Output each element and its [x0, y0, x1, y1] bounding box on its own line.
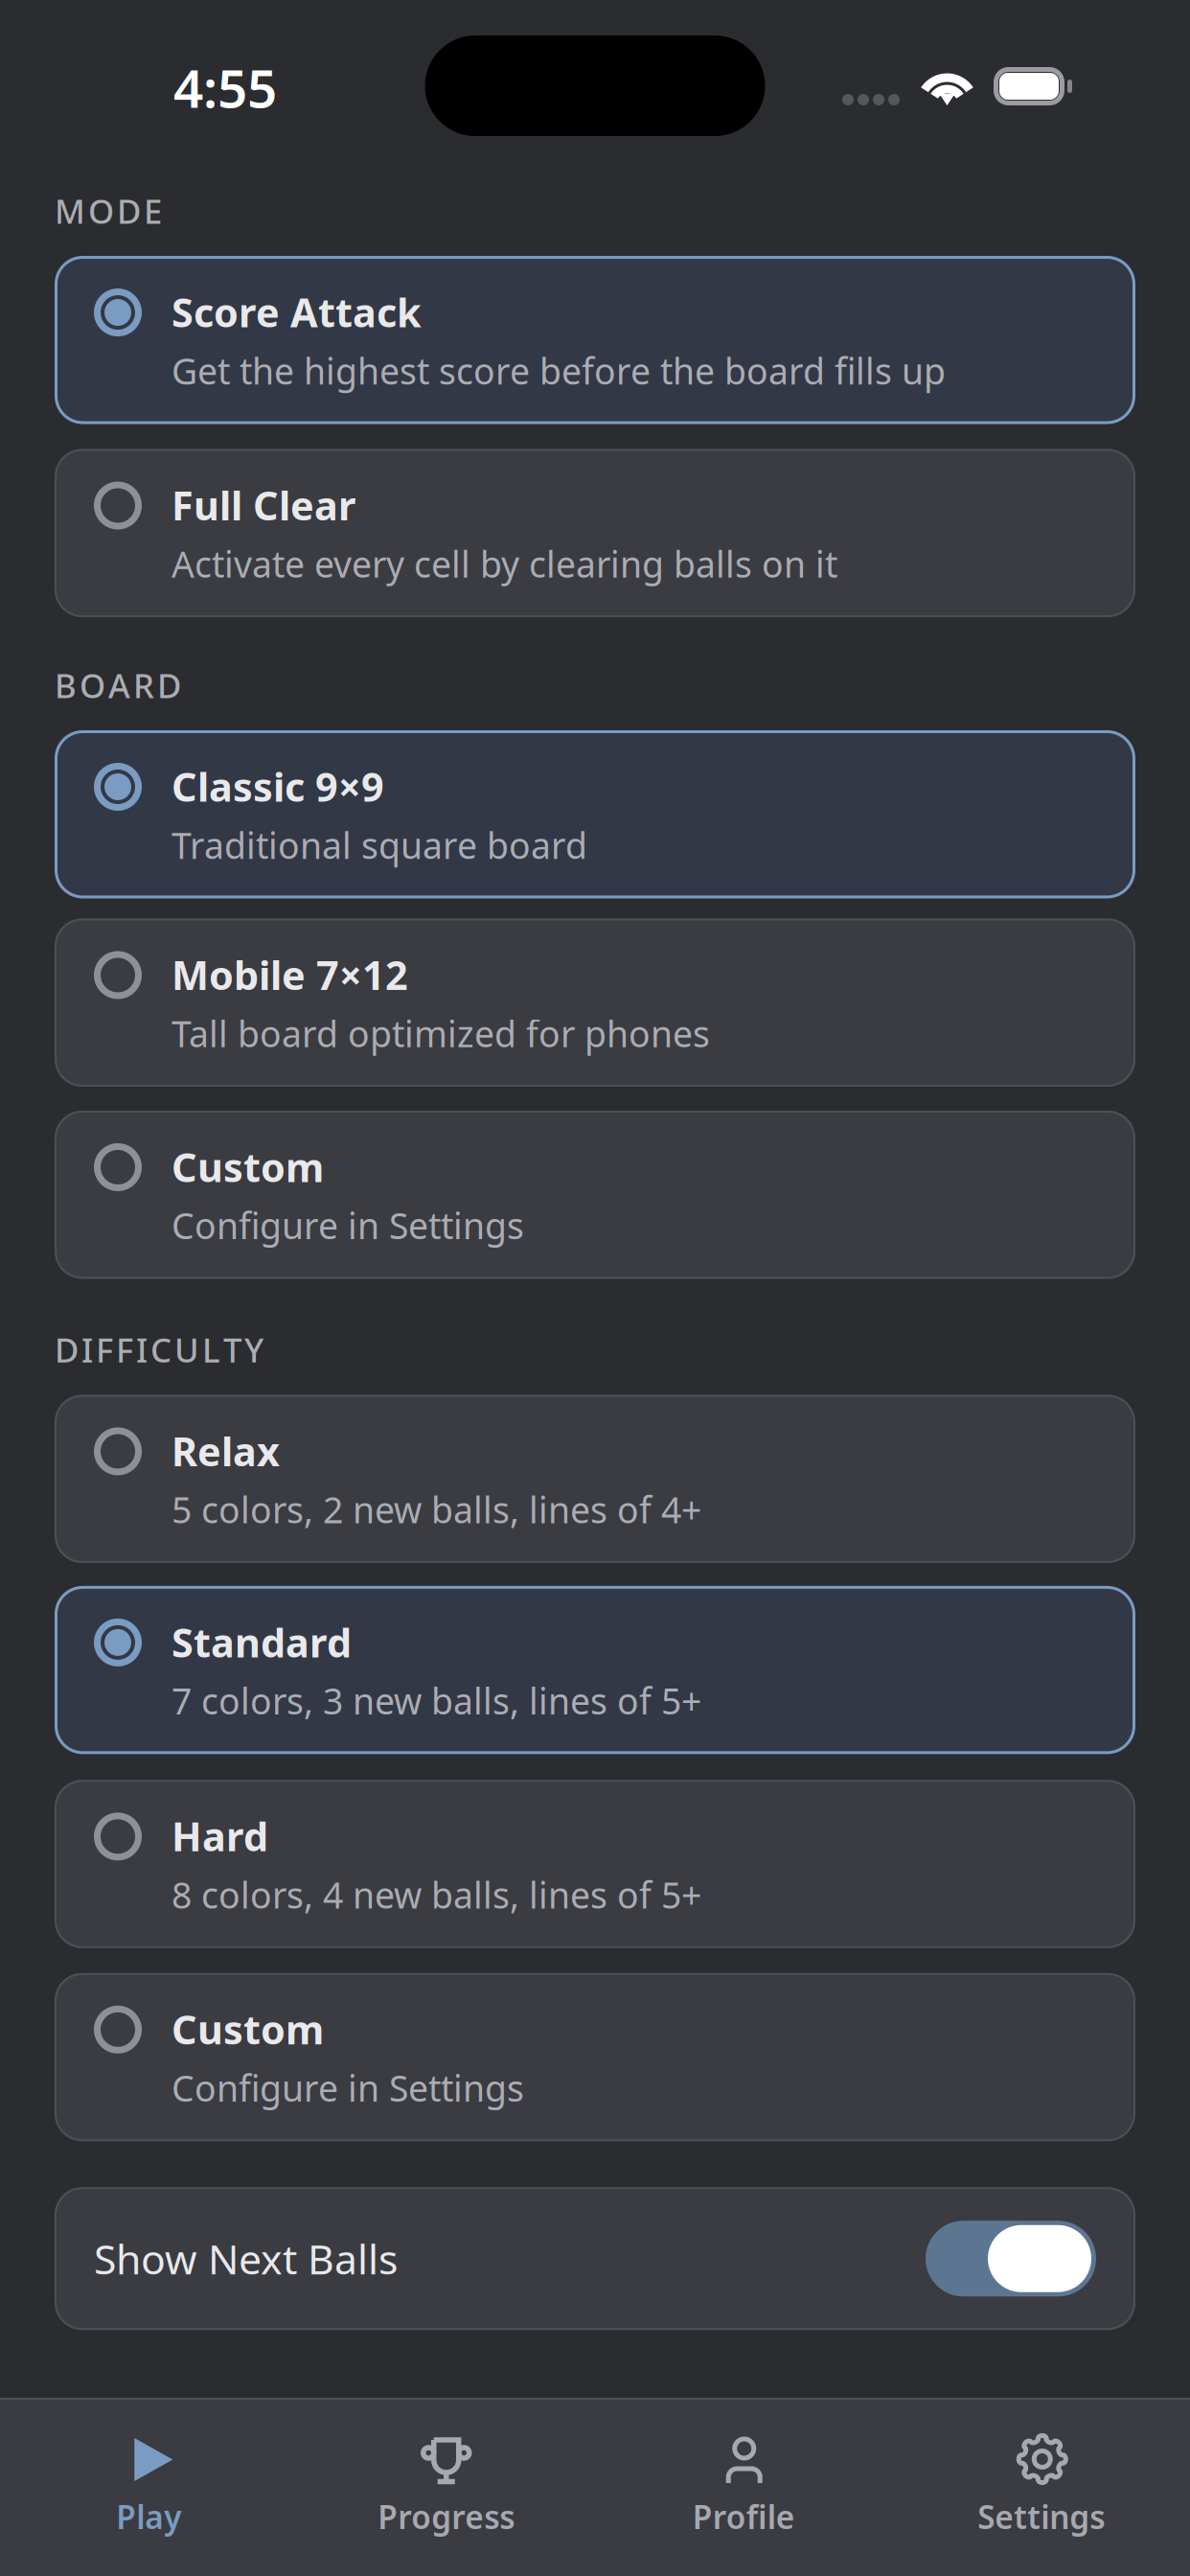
staticText: Activate every cell by clearing balls on… — [172, 540, 837, 587]
button[interactable]: Play — [0, 2409, 297, 2549]
staticText: D I F F I C U L T Y — [55, 1328, 263, 1372]
staticText: Score Attack — [172, 286, 422, 338]
staticText: 4:55 — [173, 53, 277, 122]
staticText: Custom — [172, 2003, 324, 2055]
button[interactable]: Relax — [55, 1395, 1135, 1563]
staticText: Progress — [378, 2495, 515, 2538]
button[interactable]: Profile — [595, 2409, 892, 2549]
staticText: Custom — [172, 1140, 324, 1193]
staticText: 7 colors, 3 new balls, lines of 5+ — [172, 1677, 701, 1724]
button[interactable]: Custom — [55, 1111, 1135, 1279]
staticText: Profile — [693, 2495, 795, 2538]
button[interactable]: Show Next Balls — [55, 2187, 1135, 2330]
button[interactable]: Settings — [892, 2409, 1190, 2549]
staticText: Show Next Balls — [94, 2231, 398, 2286]
staticText: Relax — [172, 1424, 280, 1477]
staticText: Configure in Settings — [172, 1202, 524, 1249]
button[interactable]: Standard — [55, 1586, 1135, 1754]
staticText: Tall board optimized for phones — [172, 1010, 710, 1057]
button[interactable]: Mobile 7×12 — [55, 919, 1135, 1087]
staticText: 8 colors, 4 new balls, lines of 5+ — [172, 1871, 701, 1918]
staticText: Full Clear — [172, 479, 355, 531]
button[interactable]: Hard — [55, 1780, 1135, 1948]
button[interactable]: Score Attack — [55, 256, 1135, 424]
button[interactable]: Full Clear — [55, 449, 1135, 617]
staticText: Standard — [172, 1616, 352, 1668]
staticText: Settings — [977, 2495, 1105, 2538]
button[interactable]: Custom — [55, 1973, 1135, 2141]
button[interactable]: Progress — [297, 2409, 595, 2549]
staticText: Hard — [172, 1810, 268, 1862]
staticText: Traditional square board — [172, 821, 587, 869]
staticText: 5 colors, 2 new balls, lines of 4+ — [172, 1486, 701, 1533]
staticText: Configure in Settings — [172, 2064, 524, 2111]
staticText: Play — [116, 2495, 181, 2538]
staticText: Mobile 7×12 — [172, 948, 408, 1001]
staticText: Classic 9×9 — [172, 760, 384, 813]
staticText: M O D E — [55, 189, 162, 233]
staticText: B O A R D — [55, 663, 181, 707]
button[interactable]: Classic 9×9 — [55, 730, 1135, 898]
staticText: Get the highest score before the board f… — [172, 347, 946, 394]
